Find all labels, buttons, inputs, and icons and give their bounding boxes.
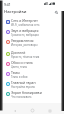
staticText: Настройки экрана	[11, 85, 35, 89]
staticText: Звук и вибрация	[11, 28, 39, 33]
staticText: Дисплей	[11, 50, 26, 55]
staticText: Настройки	[4, 9, 27, 15]
staticText: Темы и обои	[11, 75, 28, 79]
staticText: Цвета, темы	[11, 65, 27, 69]
button[interactable]: Темы	[0, 69, 64, 79]
button[interactable]: Search	[53, 9, 59, 15]
staticText: Что показывать	[11, 95, 32, 99]
button[interactable]: Сеть и Интернет	[0, 17, 64, 27]
staticText: История, разговоры	[11, 43, 38, 47]
button[interactable]: Back	[11, 107, 18, 114]
button[interactable]: Home	[29, 107, 36, 114]
staticText: Главный экран	[11, 80, 36, 85]
staticText: Wi‑Fi, мобильная сеть	[11, 23, 40, 27]
staticText: Обои и стиль	[11, 60, 33, 65]
staticText: Темы	[11, 70, 20, 75]
button[interactable]: Дисплей	[0, 49, 64, 59]
staticText: Уведомления	[11, 38, 34, 43]
staticText: Яркость, тёмная тема	[11, 55, 40, 59]
button[interactable]: Обои и стиль	[0, 59, 64, 69]
staticText: Громкость, вибрация	[11, 33, 39, 37]
button[interactable]: Уведомления	[0, 37, 64, 47]
staticText: 9:41	[4, 2, 11, 7]
button[interactable]: Звук и вибрация	[0, 27, 64, 37]
button[interactable]: Главный экран	[0, 79, 64, 89]
staticText: Сеть и Интернет	[11, 18, 38, 23]
staticText: Экран блокировки	[11, 90, 42, 95]
button[interactable]: Recents	[46, 107, 53, 114]
button[interactable]: Экран блокировки	[0, 89, 64, 99]
